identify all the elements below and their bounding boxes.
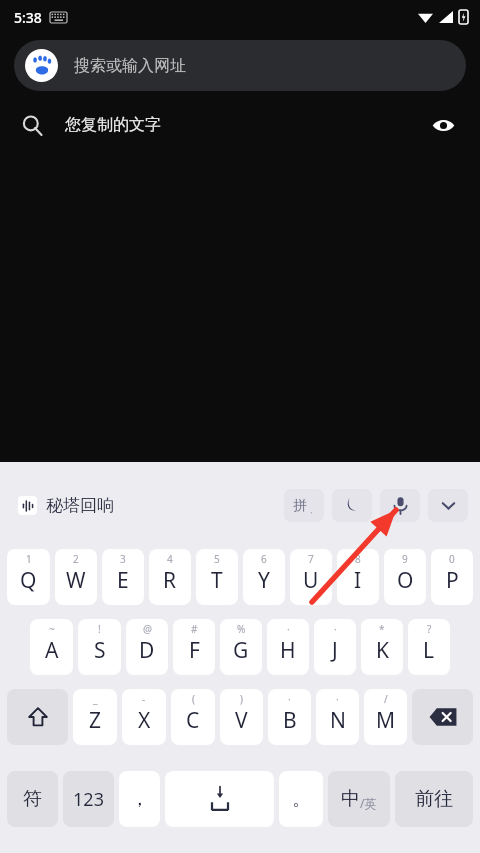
staticText: ! xyxy=(98,622,101,636)
staticText: ， xyxy=(307,505,315,515)
button[interactable]: 1 xyxy=(7,549,50,605)
button[interactable]: 搜索或输入网址 xyxy=(14,40,466,91)
staticText: 前往 xyxy=(415,787,453,811)
staticText: T xyxy=(211,566,223,595)
staticText: - xyxy=(142,692,146,706)
button[interactable]: * xyxy=(361,619,403,675)
button[interactable]: ， xyxy=(119,771,160,827)
staticText: 符 xyxy=(23,787,42,811)
staticText: 5 xyxy=(214,552,220,566)
staticText: G xyxy=(233,636,249,665)
staticText: ? xyxy=(427,622,432,636)
staticText: M xyxy=(376,706,396,735)
staticText: 5:38 xyxy=(14,8,42,27)
button[interactable]: 收起键盘 xyxy=(428,489,468,522)
staticText: · xyxy=(336,692,339,706)
button[interactable]: ? xyxy=(408,619,450,675)
staticText: V xyxy=(235,706,248,735)
staticText: K xyxy=(376,636,389,665)
button[interactable]: 空格 xyxy=(165,771,274,827)
button[interactable]: · xyxy=(267,619,309,675)
staticText: N xyxy=(330,706,346,735)
button[interactable]: 5 xyxy=(196,549,238,605)
staticText: @ xyxy=(143,622,152,636)
button[interactable]: 。 xyxy=(279,771,323,827)
button[interactable]: _ xyxy=(73,689,117,745)
button[interactable]: 您复制的文字 xyxy=(0,97,480,153)
button[interactable]: ( xyxy=(171,689,215,745)
button[interactable]: 显示 xyxy=(428,110,458,140)
staticText: 123 xyxy=(73,787,104,812)
staticText: Z xyxy=(89,706,102,735)
button[interactable]: 拼音切换 xyxy=(284,489,324,522)
button[interactable]: 6 xyxy=(243,549,285,605)
staticText: B xyxy=(283,706,297,735)
staticText: U xyxy=(303,566,319,595)
staticText: L xyxy=(423,636,435,665)
staticText: 2 xyxy=(73,552,79,566)
staticText: # xyxy=(191,622,198,636)
staticText: W xyxy=(66,566,86,595)
staticText: D xyxy=(139,636,155,665)
button[interactable]: 符 xyxy=(7,771,58,827)
button[interactable]: · xyxy=(268,689,311,745)
staticText: ， xyxy=(130,787,149,811)
staticText: · xyxy=(287,622,290,636)
staticText: E xyxy=(117,566,129,595)
button[interactable]: Shift xyxy=(7,689,68,745)
button[interactable]: / xyxy=(364,689,407,745)
staticText: 9 xyxy=(402,552,408,566)
staticText: ~ xyxy=(49,622,55,636)
button[interactable]: Backspace xyxy=(412,689,473,745)
staticText: 8 xyxy=(355,552,361,566)
button[interactable]: 夜间模式 xyxy=(332,489,372,522)
staticText: A xyxy=(45,636,59,665)
staticText: 6 xyxy=(261,552,267,566)
button[interactable]: 3 xyxy=(102,549,144,605)
staticText: 1 xyxy=(26,552,32,566)
button[interactable]: - xyxy=(122,689,166,745)
button[interactable]: 123 xyxy=(63,771,114,827)
button[interactable]: # xyxy=(173,619,215,675)
staticText: 中 xyxy=(341,787,360,811)
staticText: C xyxy=(186,706,200,735)
button[interactable]: 9 xyxy=(384,549,426,605)
button[interactable]: ) xyxy=(220,689,263,745)
button[interactable]: ~ xyxy=(30,619,73,675)
staticText: 7 xyxy=(308,552,314,566)
staticText: 拼 xyxy=(293,497,307,515)
staticText: O xyxy=(397,566,414,595)
staticText: 您复制的文字 xyxy=(65,115,161,135)
button[interactable]: 7 xyxy=(290,549,332,605)
button[interactable]: ! xyxy=(78,619,121,675)
button[interactable]: 语音输入 xyxy=(380,489,420,522)
staticText: X xyxy=(138,706,151,735)
button[interactable]: 4 xyxy=(149,549,191,605)
staticText: J xyxy=(332,636,338,665)
staticText: 0 xyxy=(449,552,455,566)
button[interactable]: · xyxy=(316,689,359,745)
staticText: I xyxy=(354,566,362,595)
staticText: S xyxy=(94,636,106,665)
button[interactable]: @ xyxy=(126,619,168,675)
staticText: Y xyxy=(258,566,270,595)
staticText: _ xyxy=(93,692,98,706)
staticText: · xyxy=(288,692,291,706)
staticText: P xyxy=(446,566,459,595)
staticText: /英 xyxy=(360,795,377,811)
staticText: 3 xyxy=(120,552,126,566)
button[interactable]: 0 xyxy=(431,549,473,605)
staticText: / xyxy=(384,692,388,706)
button[interactable]: 中 xyxy=(328,771,390,827)
button[interactable]: 8 xyxy=(337,549,379,605)
staticText: 。 xyxy=(292,787,311,811)
staticText: ) xyxy=(240,692,243,706)
staticText: R xyxy=(163,566,177,595)
button[interactable]: % xyxy=(220,619,262,675)
staticText: F xyxy=(189,636,200,665)
button[interactable]: 2 xyxy=(55,549,97,605)
button[interactable]: · xyxy=(314,619,356,675)
staticText: · xyxy=(334,622,337,636)
button[interactable]: 前往 xyxy=(395,771,473,827)
button[interactable]: 秘塔回响 xyxy=(18,495,114,516)
